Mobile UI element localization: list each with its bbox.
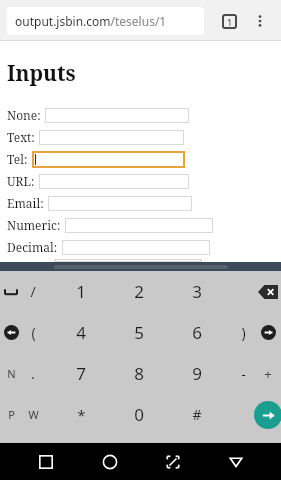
button[interactable]: Email: (7, 193, 281, 213)
button[interactable]: N (0, 353, 30, 394)
button[interactable]: Fullscreen (141, 443, 204, 480)
staticText: ) (241, 323, 246, 342)
staticText: * (77, 405, 86, 425)
button[interactable]: 8 (120, 353, 158, 394)
button[interactable]: More options (246, 7, 274, 35)
button[interactable]: URL: (7, 171, 281, 191)
button[interactable]: 5 (120, 312, 158, 353)
staticText: 2 (134, 280, 144, 303)
button[interactable]: Move cursor right (249, 312, 281, 353)
button[interactable]: Tabs, 1 open (214, 6, 244, 36)
staticText: 6 (192, 321, 202, 344)
button[interactable]: * (62, 394, 100, 435)
staticText: - (241, 365, 246, 383)
button[interactable]: + (249, 353, 281, 394)
button[interactable]: - (224, 353, 262, 394)
staticText: P (8, 407, 15, 422)
staticText: N (7, 366, 16, 381)
staticText: output.jsbin.com/teselus/1 (15, 13, 167, 29)
button[interactable]: 4 (62, 312, 100, 353)
button[interactable]: 0 (120, 394, 158, 435)
button[interactable]: Backspace (249, 271, 281, 312)
staticText: W (28, 407, 39, 422)
button[interactable]: Decimal: (7, 237, 281, 257)
button[interactable]: 1 (62, 271, 100, 312)
button[interactable]: # (178, 394, 216, 435)
button[interactable]: P (0, 394, 30, 435)
button[interactable]: Home (78, 443, 141, 480)
button[interactable]: Tel: (7, 149, 281, 169)
button[interactable]: W (14, 394, 52, 435)
staticText: 1 (227, 16, 233, 28)
button[interactable]: None: (7, 105, 281, 125)
button[interactable]: Move cursor left (0, 312, 30, 353)
button[interactable]: ) (224, 312, 262, 353)
button[interactable]: / (14, 271, 52, 312)
button[interactable]: 6 (178, 312, 216, 353)
staticText: Inputs (7, 59, 76, 88)
staticText: 4 (76, 321, 86, 344)
button[interactable]: . (14, 353, 52, 394)
staticText: 8 (134, 362, 144, 385)
staticText: # (192, 405, 202, 424)
button[interactable]: 2 (120, 271, 158, 312)
button[interactable]: 9 (178, 353, 216, 394)
staticText: . (31, 364, 35, 383)
staticText: Text: (7, 129, 35, 145)
button[interactable]: ( (14, 312, 52, 353)
button[interactable]: Text: (7, 127, 281, 147)
staticText: 0 (134, 403, 144, 426)
staticText: / (30, 282, 36, 301)
staticText: Decimal: (7, 239, 58, 255)
button[interactable]: Hide keyboard (204, 443, 267, 480)
button[interactable]: Space (0, 271, 30, 312)
staticText: ( (31, 323, 36, 342)
staticText: 7 (76, 362, 86, 385)
button[interactable]: Recent apps (14, 443, 78, 480)
button[interactable]: 3 (178, 271, 216, 312)
button[interactable]: Numeric: (7, 215, 281, 235)
button[interactable]: output.jsbin.com/teselus/1 (7, 7, 204, 35)
button[interactable]: Enter (249, 394, 281, 435)
button[interactable]: 7 (62, 353, 100, 394)
staticText: 9 (192, 362, 202, 385)
staticText: Numeric: (7, 217, 61, 233)
staticText: URL: (7, 173, 35, 189)
staticText: Email: (7, 195, 44, 211)
staticText: + (264, 365, 272, 383)
staticText: 3 (192, 280, 202, 303)
button[interactable]: Search: (7, 259, 281, 262)
staticText: None: (7, 107, 41, 123)
staticText: Tel: (7, 151, 28, 167)
staticText: 1 (76, 280, 86, 303)
staticText: 5 (134, 321, 144, 344)
